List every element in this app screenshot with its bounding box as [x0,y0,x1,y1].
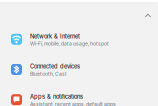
button[interactable]: Collapse [142,11,154,21]
button[interactable]: Connected devices [0,54,158,85]
button[interactable]: Network & Internet [0,24,158,54]
staticText: Wi-Fi, mobile, data usage, hotspot [30,41,109,47]
staticText: Connected devices [30,63,80,70]
button[interactable]: Apps & notifications [0,85,158,106]
staticText: Bluetooth, Cast [30,71,67,77]
staticText: Network & Internet [30,33,80,40]
staticText: Assistant, recent apps, default apps [30,101,116,106]
staticText: Apps & notifications [30,93,83,100]
